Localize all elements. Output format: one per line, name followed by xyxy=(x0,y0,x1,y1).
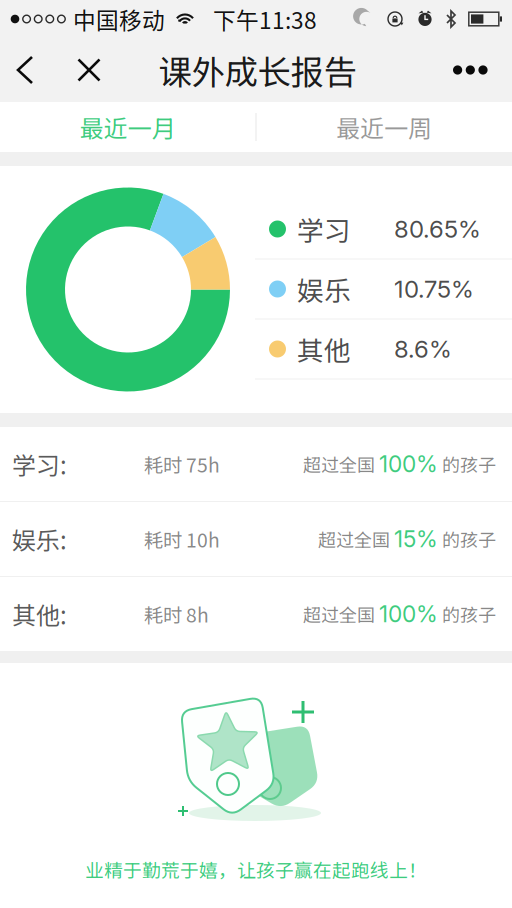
staticText: 娱乐 xyxy=(297,270,351,308)
staticText: 下午11:38 xyxy=(213,3,317,35)
staticText: 的孩子 xyxy=(438,451,496,477)
staticText: 其他 xyxy=(297,330,351,368)
staticText: 耗时 10h xyxy=(144,525,220,553)
button[interactable]: 最近一月 xyxy=(0,102,255,152)
staticText: 的孩子 xyxy=(438,526,496,552)
staticText: 耗时 75h xyxy=(144,450,220,478)
button[interactable]: Close xyxy=(51,38,115,102)
staticText: 娱乐: xyxy=(12,522,67,556)
staticText: 超过全国 xyxy=(318,526,394,552)
staticText: 15% xyxy=(394,525,438,553)
staticText: 10.75% xyxy=(394,274,474,303)
staticText: 最近一周 xyxy=(336,110,432,144)
button[interactable]: More xyxy=(400,38,488,102)
staticText: 的孩子 xyxy=(438,601,496,627)
staticText: 超过全国 xyxy=(303,451,379,477)
staticText: 耗时 8h xyxy=(144,600,209,628)
button[interactable]: Back xyxy=(0,38,51,102)
staticText: 超过全国 xyxy=(303,601,379,627)
staticText: 其他: xyxy=(12,597,67,631)
staticText: 学习: xyxy=(12,447,67,481)
staticText: 中国移动 xyxy=(73,3,165,35)
staticText: 100% xyxy=(379,450,438,478)
button[interactable]: 最近一周 xyxy=(256,102,512,152)
staticText: 80.65% xyxy=(394,214,481,243)
staticText: 课外成长报告 xyxy=(158,46,356,94)
staticText: 学习 xyxy=(297,210,351,248)
staticText: 8.6% xyxy=(394,334,452,363)
staticText: 最近一月 xyxy=(80,110,176,144)
staticText: 业精于勤荒于嬉，让孩子赢在起跑线上！ xyxy=(85,856,427,883)
staticText: 100% xyxy=(379,600,438,628)
